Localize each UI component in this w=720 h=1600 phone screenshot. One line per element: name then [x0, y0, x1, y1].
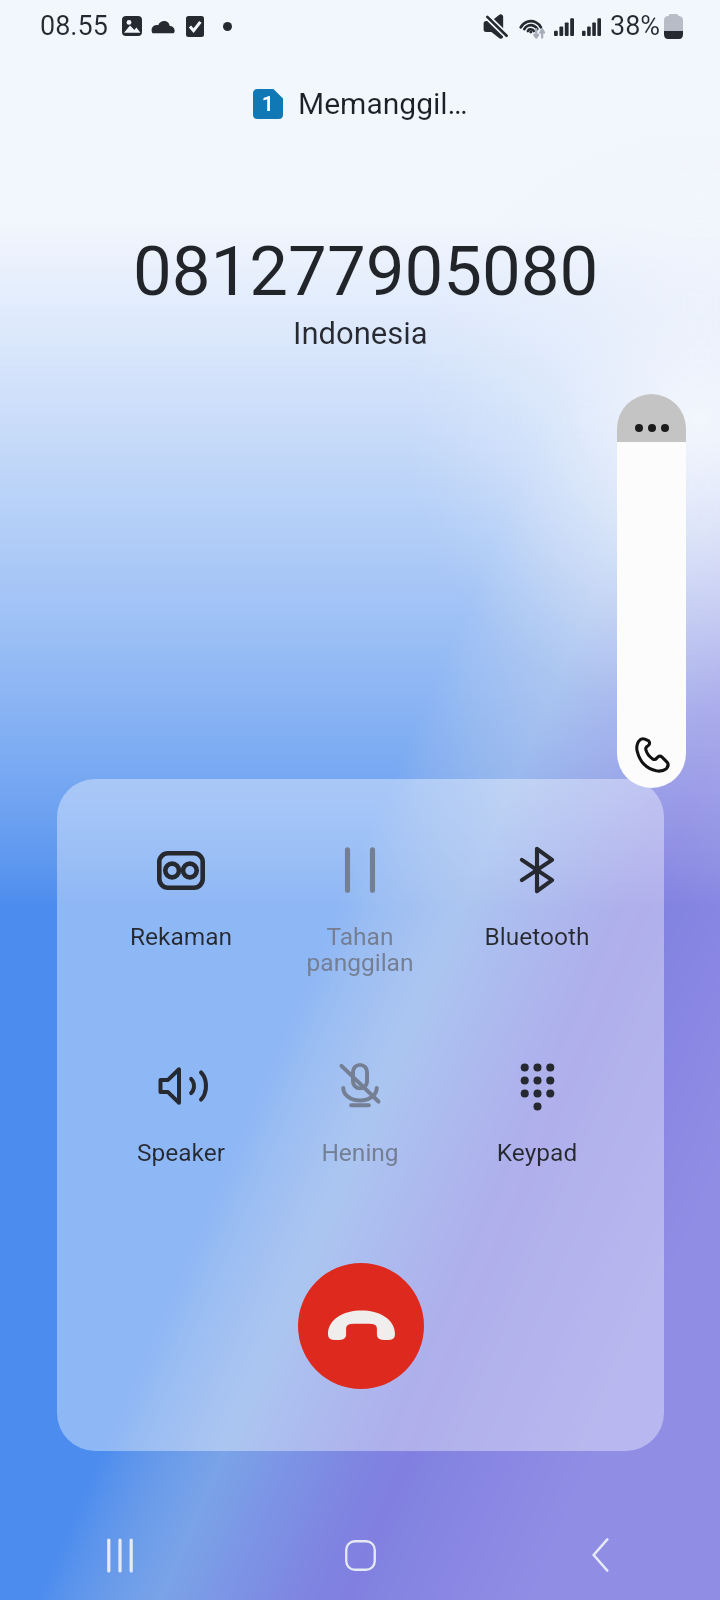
staticText: Hening	[285, 1138, 435, 1167]
button[interactable]: End call	[298, 1263, 424, 1389]
staticText: Rekaman	[106, 922, 256, 951]
button[interactable]: Home	[240, 1510, 480, 1600]
button[interactable]: Rekaman	[106, 842, 256, 951]
button[interactable]: Bluetooth	[462, 842, 612, 951]
staticText: 38%	[610, 10, 661, 42]
staticText: 081277905080	[133, 231, 599, 312]
button[interactable]: Recent apps	[0, 1510, 240, 1600]
button[interactable]: Keypad	[462, 1058, 612, 1167]
staticText: 08.55	[40, 10, 108, 42]
button[interactable]: Speaker	[106, 1058, 256, 1167]
button[interactable]: Tahan panggilan	[285, 842, 435, 977]
staticText: 1	[262, 92, 274, 117]
button[interactable]: Back	[480, 1510, 720, 1600]
staticText: Bluetooth	[462, 922, 612, 951]
staticText: Tahan panggilan	[285, 922, 435, 977]
button[interactable]: Hening	[285, 1058, 435, 1167]
button[interactable]: Edge panel handle	[617, 394, 686, 788]
staticText: Speaker	[106, 1138, 256, 1167]
staticText: Indonesia	[293, 315, 428, 351]
staticText: Keypad	[462, 1138, 612, 1167]
staticText: Memanggil…	[298, 86, 468, 121]
